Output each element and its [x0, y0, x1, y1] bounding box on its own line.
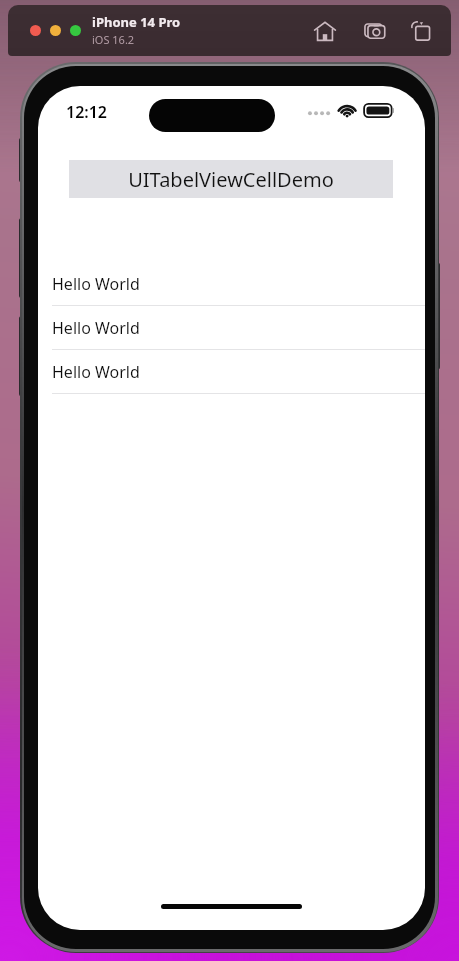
- button[interactable]: Home: [310, 16, 340, 46]
- button[interactable]: Hello World: [38, 350, 425, 394]
- button[interactable]: Screenshot: [360, 16, 390, 46]
- button[interactable]: Maximize: [70, 25, 81, 36]
- button[interactable]: Rotate: [406, 16, 436, 46]
- staticText: Hello World: [52, 317, 140, 339]
- button[interactable]: Hello World: [38, 306, 425, 350]
- button[interactable]: Hello World: [38, 262, 425, 306]
- staticText: iPhone 14 Pro: [92, 13, 181, 31]
- staticText: Hello World: [52, 361, 140, 383]
- staticText: UITabelViewCellDemo: [128, 166, 334, 193]
- staticText: 12:12: [66, 101, 108, 123]
- staticText: Hello World: [52, 273, 140, 295]
- button[interactable]: Close: [30, 25, 41, 36]
- staticText: iOS 16.2: [92, 32, 135, 47]
- button[interactable]: Minimize: [50, 25, 61, 36]
